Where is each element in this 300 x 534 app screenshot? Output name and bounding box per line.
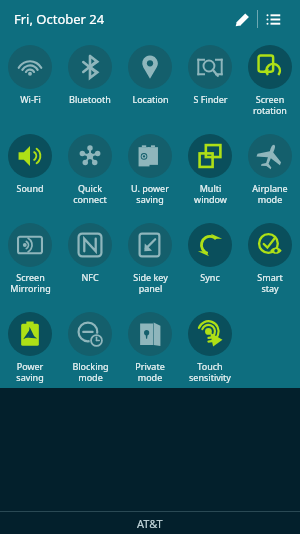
button[interactable]: NFC: [60, 216, 120, 305]
staticText: Private mode: [135, 360, 165, 383]
button[interactable]: Sync: [180, 216, 240, 305]
staticText: Multi window: [194, 182, 227, 205]
staticText: AT&T: [137, 516, 163, 531]
staticText: Sound: [16, 182, 44, 194]
button[interactable]: U. power saving: [120, 127, 180, 216]
button[interactable]: Sound: [0, 127, 60, 216]
staticText: Bluetooth: [69, 93, 111, 105]
button[interactable]: Edit: [227, 4, 257, 34]
staticText: Airplane mode: [252, 182, 288, 205]
button[interactable]: Blocking mode: [60, 305, 120, 385]
staticText: Touch sensitivity: [189, 360, 231, 383]
button[interactable]: Power saving: [0, 305, 60, 385]
staticText: Blocking mode: [72, 360, 109, 383]
staticText: Smart stay: [257, 271, 283, 294]
button[interactable]: Bluetooth: [60, 38, 120, 127]
staticText: S Finder: [193, 93, 228, 105]
staticText: Wi-Fi: [20, 93, 41, 105]
button[interactable]: AT&T: [0, 512, 300, 534]
button[interactable]: Touch sensitivity: [180, 305, 240, 385]
button[interactable]: List view: [258, 4, 288, 34]
button[interactable]: S Finder: [180, 38, 240, 127]
button[interactable]: Screen rotation: [240, 38, 300, 127]
staticText: U. power saving: [131, 182, 169, 205]
staticText: Power saving: [16, 360, 44, 383]
button[interactable]: Wi-Fi: [0, 38, 60, 127]
staticText: Screen rotation: [253, 93, 287, 116]
staticText: Screen Mirroring: [10, 271, 51, 294]
staticText: Sync: [200, 271, 220, 283]
button[interactable]: Multi window: [180, 127, 240, 216]
staticText: NFC: [81, 271, 99, 283]
button[interactable]: Screen Mirroring: [0, 216, 60, 305]
staticText: Fri, October 24: [14, 10, 105, 28]
staticText: Quick connect: [73, 182, 107, 205]
button[interactable]: Location: [120, 38, 180, 127]
button[interactable]: Quick connect: [60, 127, 120, 216]
staticText: Location: [132, 93, 169, 105]
button[interactable]: Side key panel: [120, 216, 180, 305]
staticText: Side key panel: [133, 271, 168, 294]
button[interactable]: Airplane mode: [240, 127, 300, 216]
button[interactable]: Smart stay: [240, 216, 300, 305]
button[interactable]: Private mode: [120, 305, 180, 385]
